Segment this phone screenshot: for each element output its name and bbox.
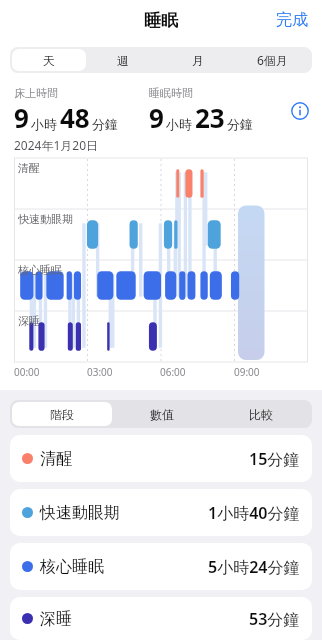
button[interactable]: 完成 — [270, 5, 314, 35]
button[interactable]: 6個月 — [235, 49, 310, 71]
button[interactable]: 深睡 — [10, 597, 312, 640]
button[interactable]: 週 — [86, 49, 160, 71]
staticText: 小時 — [31, 116, 57, 132]
staticText: 00:00 — [14, 365, 40, 379]
staticText: 分鐘 — [227, 116, 253, 132]
staticText: 09:00 — [234, 365, 260, 379]
button[interactable]: 清醒 — [10, 435, 312, 482]
staticText: 清醒 — [18, 161, 40, 175]
staticText: 9 — [149, 100, 164, 135]
staticText: 分鐘 — [92, 116, 118, 132]
staticText: 15分鐘 — [249, 448, 300, 470]
button[interactable]: 快速動眼期 — [10, 489, 312, 536]
button[interactable]: 核心睡眠 — [10, 543, 312, 590]
staticText: 核心睡眠 — [18, 263, 62, 277]
staticText: 6個月 — [257, 52, 288, 68]
staticText: 53分鐘 — [249, 608, 300, 630]
button[interactable]: 資訊 — [286, 97, 314, 125]
staticText: 月 — [192, 53, 204, 68]
staticText: 1小時40分鐘 — [208, 502, 300, 524]
staticText: 9 — [14, 100, 29, 135]
button[interactable]: 數值 — [112, 402, 211, 426]
staticText: 階段 — [50, 407, 74, 422]
button[interactable]: 比較 — [211, 402, 310, 426]
staticText: 數值 — [150, 407, 174, 422]
staticText: 48 — [60, 100, 90, 135]
staticText: 睡眠 — [144, 10, 178, 31]
staticText: 床上時間 — [14, 86, 58, 100]
staticText: 核心睡眠 — [40, 557, 104, 577]
staticText: 天 — [43, 53, 55, 68]
staticText: 週 — [117, 53, 129, 68]
button[interactable]: 天 — [12, 49, 86, 71]
staticText: 快速動眼期 — [40, 503, 120, 523]
staticText: 2024年1月20日 — [14, 137, 99, 153]
staticText: 03:00 — [87, 365, 113, 379]
staticText: 5小時24分鐘 — [208, 556, 300, 578]
staticText: 睡眠時間 — [149, 86, 193, 100]
staticText: 快速動眼期 — [18, 212, 73, 226]
staticText: 23 — [195, 100, 225, 135]
button[interactable]: 階段 — [12, 402, 112, 426]
button[interactable]: 月 — [160, 49, 235, 71]
staticText: 06:00 — [160, 365, 186, 379]
staticText: 清醒 — [40, 449, 72, 469]
staticText: 深睡 — [40, 609, 72, 629]
staticText: 深睡 — [18, 314, 40, 328]
staticText: 小時 — [166, 116, 192, 132]
staticText: 完成 — [276, 10, 308, 30]
staticText: 比較 — [249, 407, 273, 422]
